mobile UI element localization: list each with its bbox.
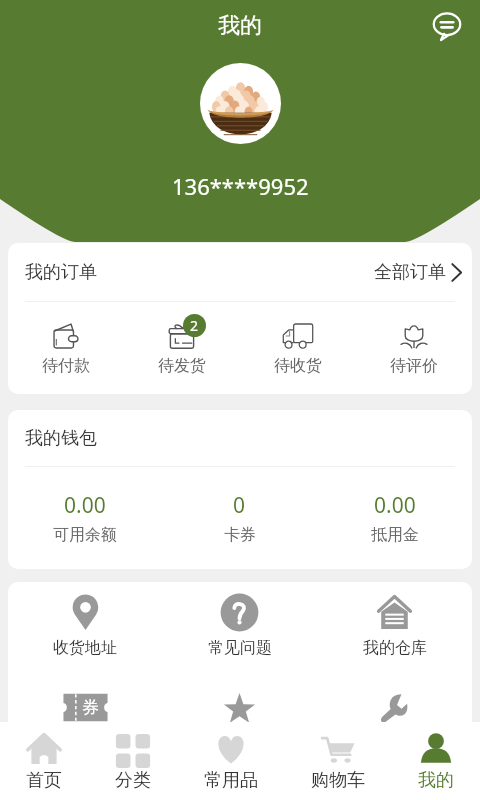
staticText: 2 bbox=[190, 316, 199, 335]
button[interactable]: 我的 bbox=[418, 722, 454, 800]
button[interactable]: 首页 bbox=[26, 722, 62, 800]
button[interactable]: 券 bbox=[8, 677, 162, 753]
staticText: 卡券 bbox=[224, 525, 256, 545]
button[interactable]: 我的收藏 bbox=[162, 677, 317, 753]
button[interactable]: 我的仓库 bbox=[317, 582, 472, 658]
staticText: 待发货 bbox=[158, 356, 206, 376]
button[interactable]: Avatar bbox=[200, 63, 281, 144]
staticText: 待收货 bbox=[274, 356, 322, 376]
button[interactable]: 分类 bbox=[115, 722, 151, 800]
staticText: 我的仓库 bbox=[363, 638, 427, 658]
button[interactable]: 2 bbox=[124, 302, 240, 376]
button[interactable]: 设置 bbox=[317, 677, 472, 753]
staticText: 我的订单 bbox=[25, 261, 97, 284]
staticText: 我的 bbox=[218, 12, 262, 40]
staticText: 常用品 bbox=[204, 769, 258, 792]
button[interactable]: 0.00 bbox=[8, 467, 162, 545]
button[interactable]: 待评价 bbox=[356, 302, 472, 376]
button[interactable]: 待付款 bbox=[8, 302, 124, 376]
button[interactable]: 常见问题 bbox=[162, 582, 317, 658]
button[interactable]: 0.00 bbox=[317, 467, 472, 545]
staticText: 分类 bbox=[115, 769, 151, 792]
button[interactable]: 常用品 bbox=[204, 722, 258, 800]
button[interactable]: Messages bbox=[432, 11, 462, 41]
staticText: 0.00 bbox=[374, 491, 416, 520]
staticText: 购物车 bbox=[311, 769, 365, 792]
staticText: 我的钱包 bbox=[25, 427, 97, 450]
button[interactable]: 收货地址 bbox=[8, 582, 162, 658]
staticText: 136****9952 bbox=[172, 171, 309, 201]
staticText: 我的 bbox=[418, 769, 454, 792]
staticText: 我的收藏 bbox=[208, 733, 272, 753]
button[interactable]: 待收货 bbox=[240, 302, 356, 376]
staticText: 抵用金 bbox=[371, 525, 419, 545]
staticText: 券 bbox=[82, 697, 99, 718]
staticText: 待评价 bbox=[390, 356, 438, 376]
staticText: 待付款 bbox=[42, 356, 90, 376]
staticText: 可用余额 bbox=[53, 525, 117, 545]
staticText: 收货地址 bbox=[53, 638, 117, 658]
button[interactable]: 购物车 bbox=[311, 722, 365, 800]
staticText: 0.00 bbox=[64, 491, 106, 520]
staticText: 首页 bbox=[26, 769, 62, 792]
staticText: 0 bbox=[233, 491, 246, 520]
button[interactable]: 我的订单 bbox=[8, 243, 472, 301]
staticText: 全部订单 bbox=[374, 261, 446, 284]
staticText: 常见问题 bbox=[208, 638, 272, 658]
button[interactable]: 0 bbox=[162, 467, 317, 545]
